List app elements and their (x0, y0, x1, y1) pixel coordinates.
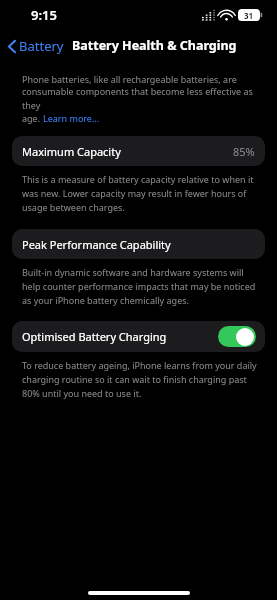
staticText: Maximum Capacity (22, 144, 121, 159)
staticText: Battery (19, 37, 64, 55)
button[interactable]: Battery (0, 33, 70, 59)
staticText: Built-in dynamic software and hardware s… (22, 266, 257, 307)
staticText: age. (22, 112, 43, 124)
staticText: Battery Health & Charging (72, 37, 237, 54)
staticText: consumable components that become less e… (22, 85, 259, 112)
staticText: 9:15 (31, 6, 57, 24)
button[interactable]: Optimised Battery Charging toggle (218, 326, 256, 347)
button[interactable]: Maximum Capacity (12, 136, 265, 166)
staticText: 31 (244, 10, 254, 21)
staticText: Peak Performance Capability (22, 237, 171, 252)
staticText: Phone batteries, like all rechargeable b… (22, 73, 237, 85)
button[interactable]: Learn more… (43, 112, 100, 124)
staticText: 85% (233, 144, 255, 159)
button[interactable]: Optimised Battery Charging (12, 321, 265, 352)
staticText: This is a measure of battery capacity re… (22, 173, 257, 214)
button[interactable]: Peak Performance Capability (12, 229, 265, 259)
staticText: Optimised Battery Charging (22, 329, 167, 344)
staticText: To reduce battery ageing, iPhone learns … (22, 359, 257, 400)
